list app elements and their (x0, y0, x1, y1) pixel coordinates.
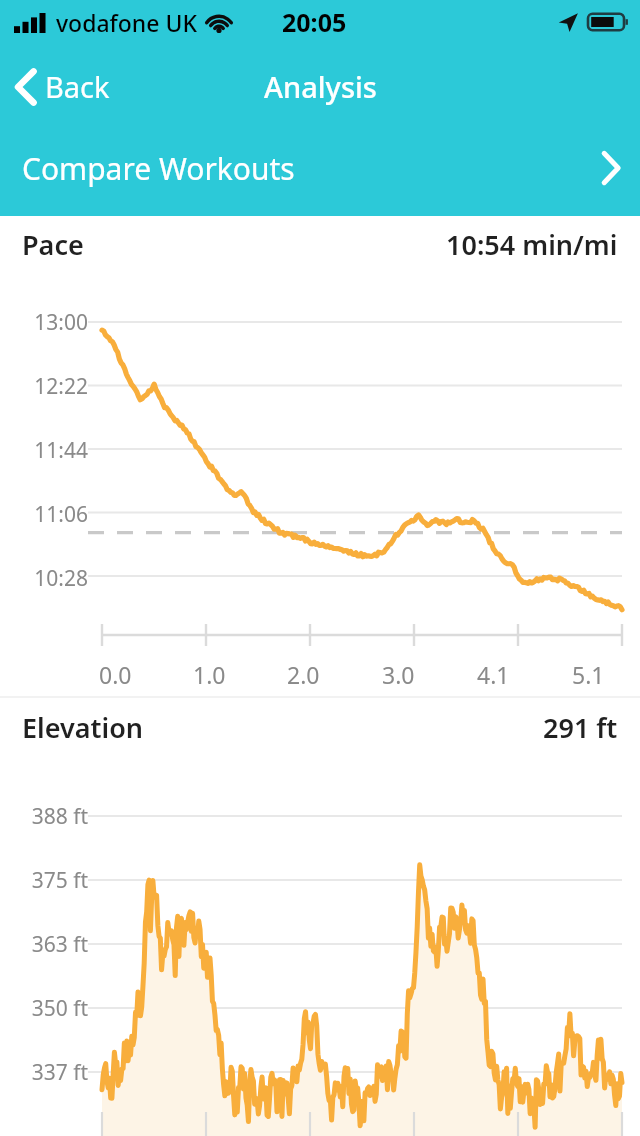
staticText: Elevation (22, 709, 144, 746)
staticText: 12:22 (0, 372, 88, 401)
button[interactable]: Compare Workouts (0, 126, 640, 210)
staticText: 1.0 (193, 659, 226, 690)
staticText: 10:54 min/mi (446, 226, 618, 263)
staticText: 4.1 (477, 659, 510, 690)
staticText: 11:06 (0, 500, 88, 529)
staticText: 363 ft (0, 930, 88, 959)
staticText: 11:44 (0, 436, 88, 465)
staticText: 10:28 (0, 564, 88, 593)
staticText: 388 ft (0, 802, 88, 831)
staticText: Back (45, 67, 110, 106)
staticText: 0.0 (99, 659, 132, 690)
staticText: 350 ft (0, 994, 88, 1023)
staticText: 20:05 (282, 5, 347, 39)
staticText: 3.0 (382, 659, 415, 690)
staticText: Compare Workouts (22, 148, 295, 189)
staticText: 2.0 (287, 659, 320, 690)
staticText: Analysis (264, 67, 377, 106)
staticText: 13:00 (0, 308, 88, 337)
staticText: 337 ft (0, 1058, 88, 1087)
staticText: 375 ft (0, 866, 88, 895)
staticText: 5.1 (572, 659, 605, 690)
staticText: Pace (22, 226, 84, 263)
button[interactable]: Back (0, 61, 122, 112)
staticText: vodafone UK (56, 7, 197, 38)
staticText: 291 ft (543, 709, 618, 746)
